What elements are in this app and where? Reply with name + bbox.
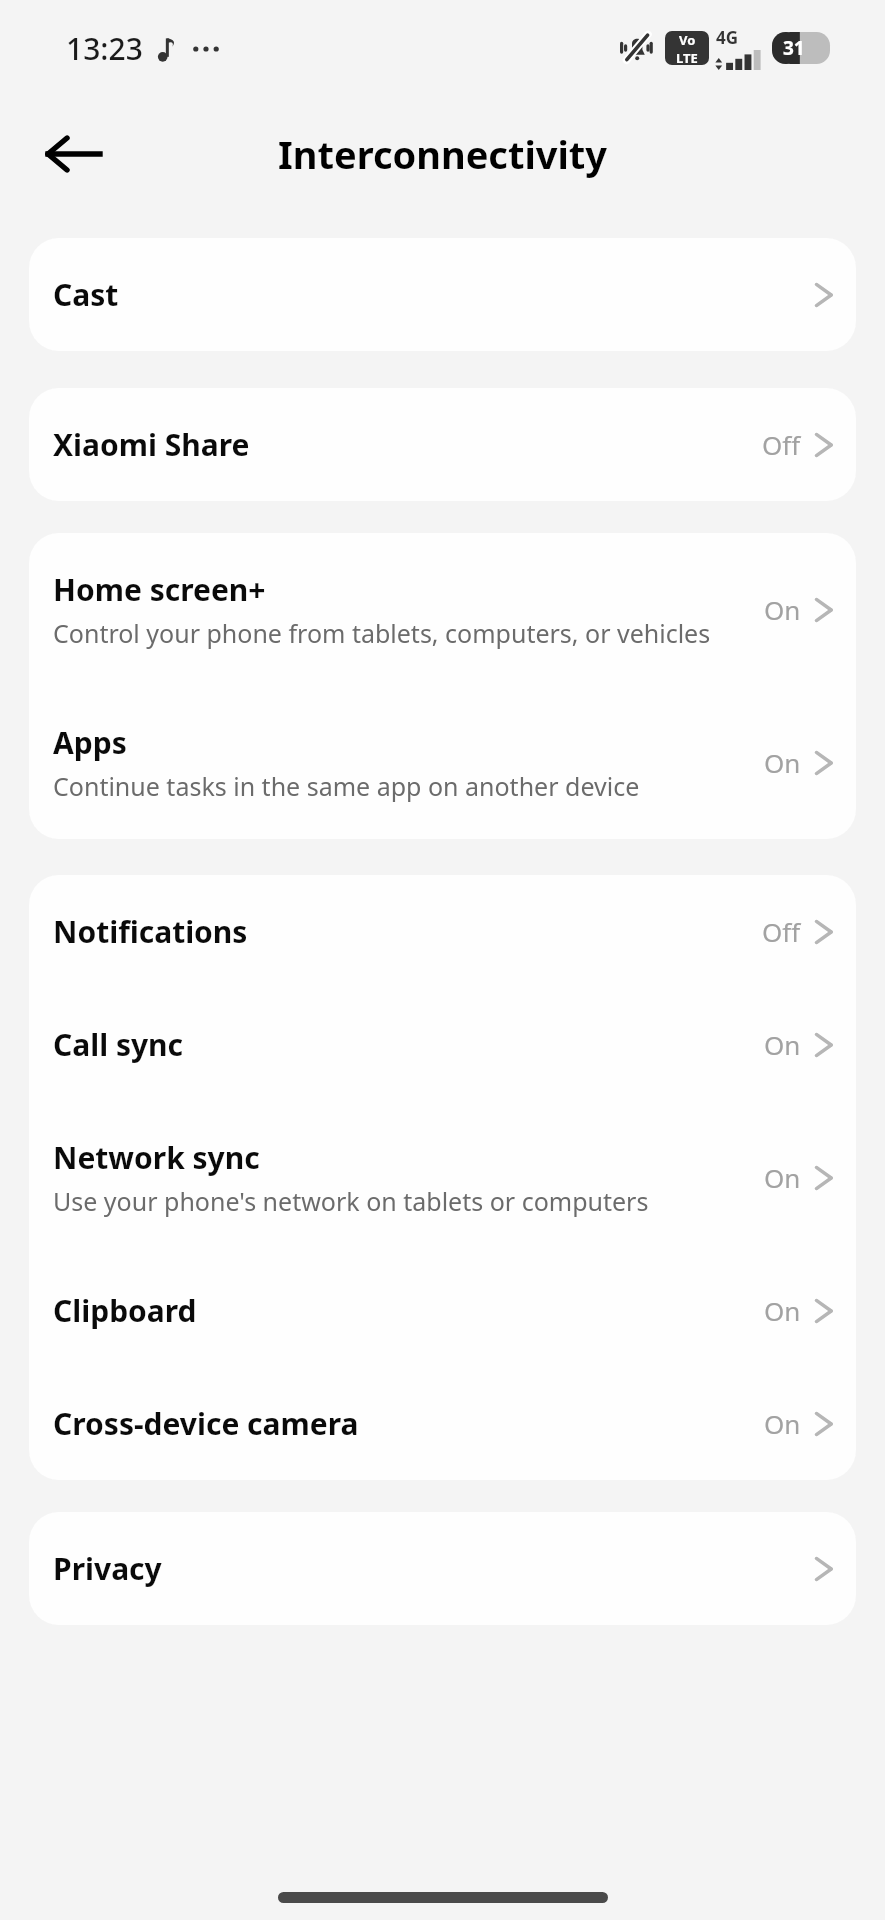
staticText: On bbox=[764, 1293, 801, 1328]
staticText: On bbox=[764, 1160, 801, 1195]
staticText: Control your phone from tablets, compute… bbox=[53, 616, 711, 650]
staticText: Continue tasks in the same app on anothe… bbox=[53, 769, 640, 803]
button[interactable]: Network sync bbox=[29, 1101, 856, 1254]
button[interactable]: Cast bbox=[29, 238, 856, 351]
staticText: Off bbox=[762, 914, 801, 949]
staticText: LTE bbox=[676, 49, 698, 65]
staticText: 13:23 bbox=[66, 28, 143, 69]
staticText: Apps bbox=[53, 722, 127, 763]
staticText: Home screen+ bbox=[53, 569, 266, 610]
staticText: Privacy bbox=[53, 1548, 162, 1589]
staticText: Xiaomi Share bbox=[53, 424, 250, 465]
button[interactable]: Call sync bbox=[29, 988, 856, 1101]
staticText: Use your phone's network on tablets or c… bbox=[53, 1184, 649, 1218]
staticText: Interconnectivity bbox=[278, 128, 608, 180]
button[interactable]: Back bbox=[42, 122, 106, 186]
staticText: Network sync bbox=[53, 1137, 260, 1178]
button[interactable]: Clipboard bbox=[29, 1254, 856, 1367]
staticText: Cast bbox=[53, 274, 119, 315]
button[interactable]: Privacy bbox=[29, 1512, 856, 1625]
staticText: Clipboard bbox=[53, 1290, 197, 1331]
staticText: On bbox=[764, 592, 801, 627]
staticText: On bbox=[764, 745, 801, 780]
button[interactable]: Cross-device camera bbox=[29, 1367, 856, 1480]
staticText: Off bbox=[762, 427, 801, 462]
staticText: Cross-device camera bbox=[53, 1403, 359, 1444]
staticText: On bbox=[764, 1027, 801, 1062]
staticText: Call sync bbox=[53, 1024, 184, 1065]
staticText: Vo bbox=[679, 31, 696, 49]
button[interactable]: Notifications bbox=[29, 875, 856, 988]
staticText: 31 bbox=[783, 35, 805, 61]
staticText: Notifications bbox=[53, 911, 248, 952]
button[interactable]: Home screen+ bbox=[29, 533, 856, 686]
button[interactable]: Xiaomi Share bbox=[29, 388, 856, 501]
button[interactable]: Apps bbox=[29, 686, 856, 839]
staticText: 4G bbox=[716, 26, 739, 49]
staticText: On bbox=[764, 1406, 801, 1441]
